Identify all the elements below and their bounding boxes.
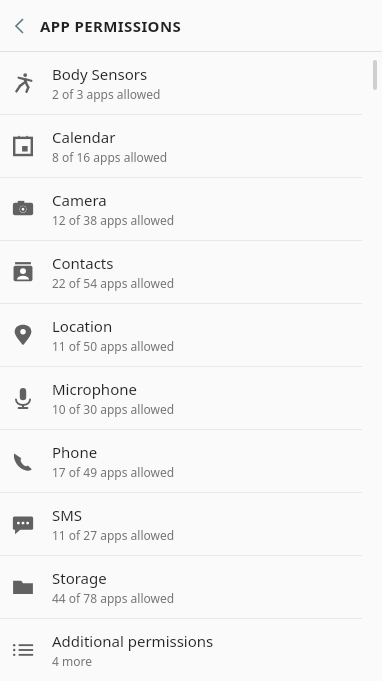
staticText: Phone (52, 442, 98, 462)
button[interactable]: Phone (0, 430, 382, 492)
staticText: 12 of 38 apps allowed (52, 212, 175, 228)
button[interactable]: Contacts (0, 241, 382, 303)
staticText: Camera (52, 190, 107, 210)
button[interactable]: Location (0, 304, 382, 366)
button[interactable]: Calendar (0, 115, 382, 177)
staticText: 11 of 50 apps allowed (52, 338, 175, 354)
staticText: 22 of 54 apps allowed (52, 275, 175, 291)
button[interactable]: Camera (0, 178, 382, 240)
staticText: Microphone (52, 379, 137, 399)
button[interactable]: SMS (0, 493, 382, 555)
staticText: Additional permissions (52, 631, 214, 651)
button[interactable]: Navigate up (0, 6, 40, 46)
staticText: Location (52, 316, 113, 336)
staticText: Contacts (52, 253, 114, 273)
staticText: 2 of 3 apps allowed (52, 86, 161, 102)
staticText: 8 of 16 apps allowed (52, 149, 168, 165)
staticText: 17 of 49 apps allowed (52, 464, 175, 480)
button[interactable]: Body Sensors (0, 52, 382, 114)
staticText: 4 more (52, 653, 92, 669)
staticText: APP PERMISSIONS (40, 16, 182, 36)
staticText: SMS (52, 505, 83, 525)
staticText: 11 of 27 apps allowed (52, 527, 175, 543)
button[interactable]: Microphone (0, 367, 382, 429)
button[interactable]: Additional permissions (0, 619, 382, 681)
staticText: 44 of 78 apps allowed (52, 590, 175, 606)
staticText: 10 of 30 apps allowed (52, 401, 175, 417)
staticText: Calendar (52, 127, 116, 147)
staticText: Body Sensors (52, 64, 148, 84)
staticText: Storage (52, 568, 107, 588)
button[interactable]: Storage (0, 556, 382, 618)
